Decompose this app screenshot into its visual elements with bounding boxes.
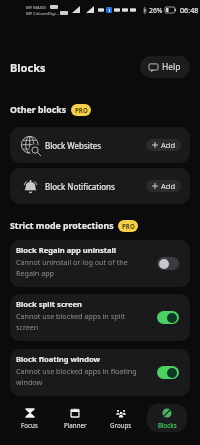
staticText: Add — [161, 140, 176, 150]
button[interactable]: Toggle off — [157, 257, 179, 270]
button[interactable]: Toggle on — [157, 366, 179, 379]
staticText: Strict mode protections — [10, 220, 114, 232]
button[interactable]: Block split screen — [10, 294, 190, 341]
button[interactable]: Groups — [101, 404, 141, 432]
staticText: Block Regain app uninstall — [16, 245, 117, 255]
staticText: PRO — [75, 106, 88, 114]
button[interactable]: Blocks — [147, 404, 187, 432]
staticText: Planner — [64, 421, 87, 429]
button[interactable]: Block floating window — [10, 349, 190, 396]
staticText: Block split screen — [16, 299, 83, 309]
staticText: Cannot uninstall or log out of the Regai… — [16, 257, 139, 278]
staticText: Focus — [21, 421, 38, 429]
staticText: PRO — [122, 222, 135, 230]
staticText: Blocks — [158, 421, 177, 429]
staticText: Groups — [110, 421, 132, 429]
staticText: Cannot use blocked apps in split screen — [16, 311, 139, 332]
staticText: Block floating window — [16, 354, 101, 364]
staticText: Help — [162, 61, 181, 73]
staticText: Blocks — [10, 60, 46, 75]
staticText: MY CelcomDigi... — [26, 11, 59, 17]
staticText: Block Websites — [45, 140, 102, 151]
staticText: 06:48 — [180, 5, 199, 15]
button[interactable]: Planner — [55, 404, 95, 432]
button[interactable]: Block Notifications — [10, 168, 190, 204]
staticText: Add — [161, 181, 176, 191]
button[interactable]: Add — [146, 180, 181, 192]
button[interactable]: Block Websites — [10, 127, 190, 163]
button[interactable]: Focus — [10, 404, 49, 432]
button[interactable]: Add — [146, 139, 181, 151]
button[interactable]: Toggle on — [157, 311, 179, 324]
button[interactable]: Block Regain app uninstall — [10, 240, 190, 287]
staticText: MY MAXIS — [26, 5, 46, 11]
staticText: Cannot use blocked apps in floating wind… — [16, 366, 139, 387]
button[interactable]: Help — [140, 56, 190, 78]
staticText: Other blocks — [10, 104, 67, 116]
staticText: Block Notifications — [45, 181, 115, 192]
staticText: 26% — [149, 6, 163, 15]
